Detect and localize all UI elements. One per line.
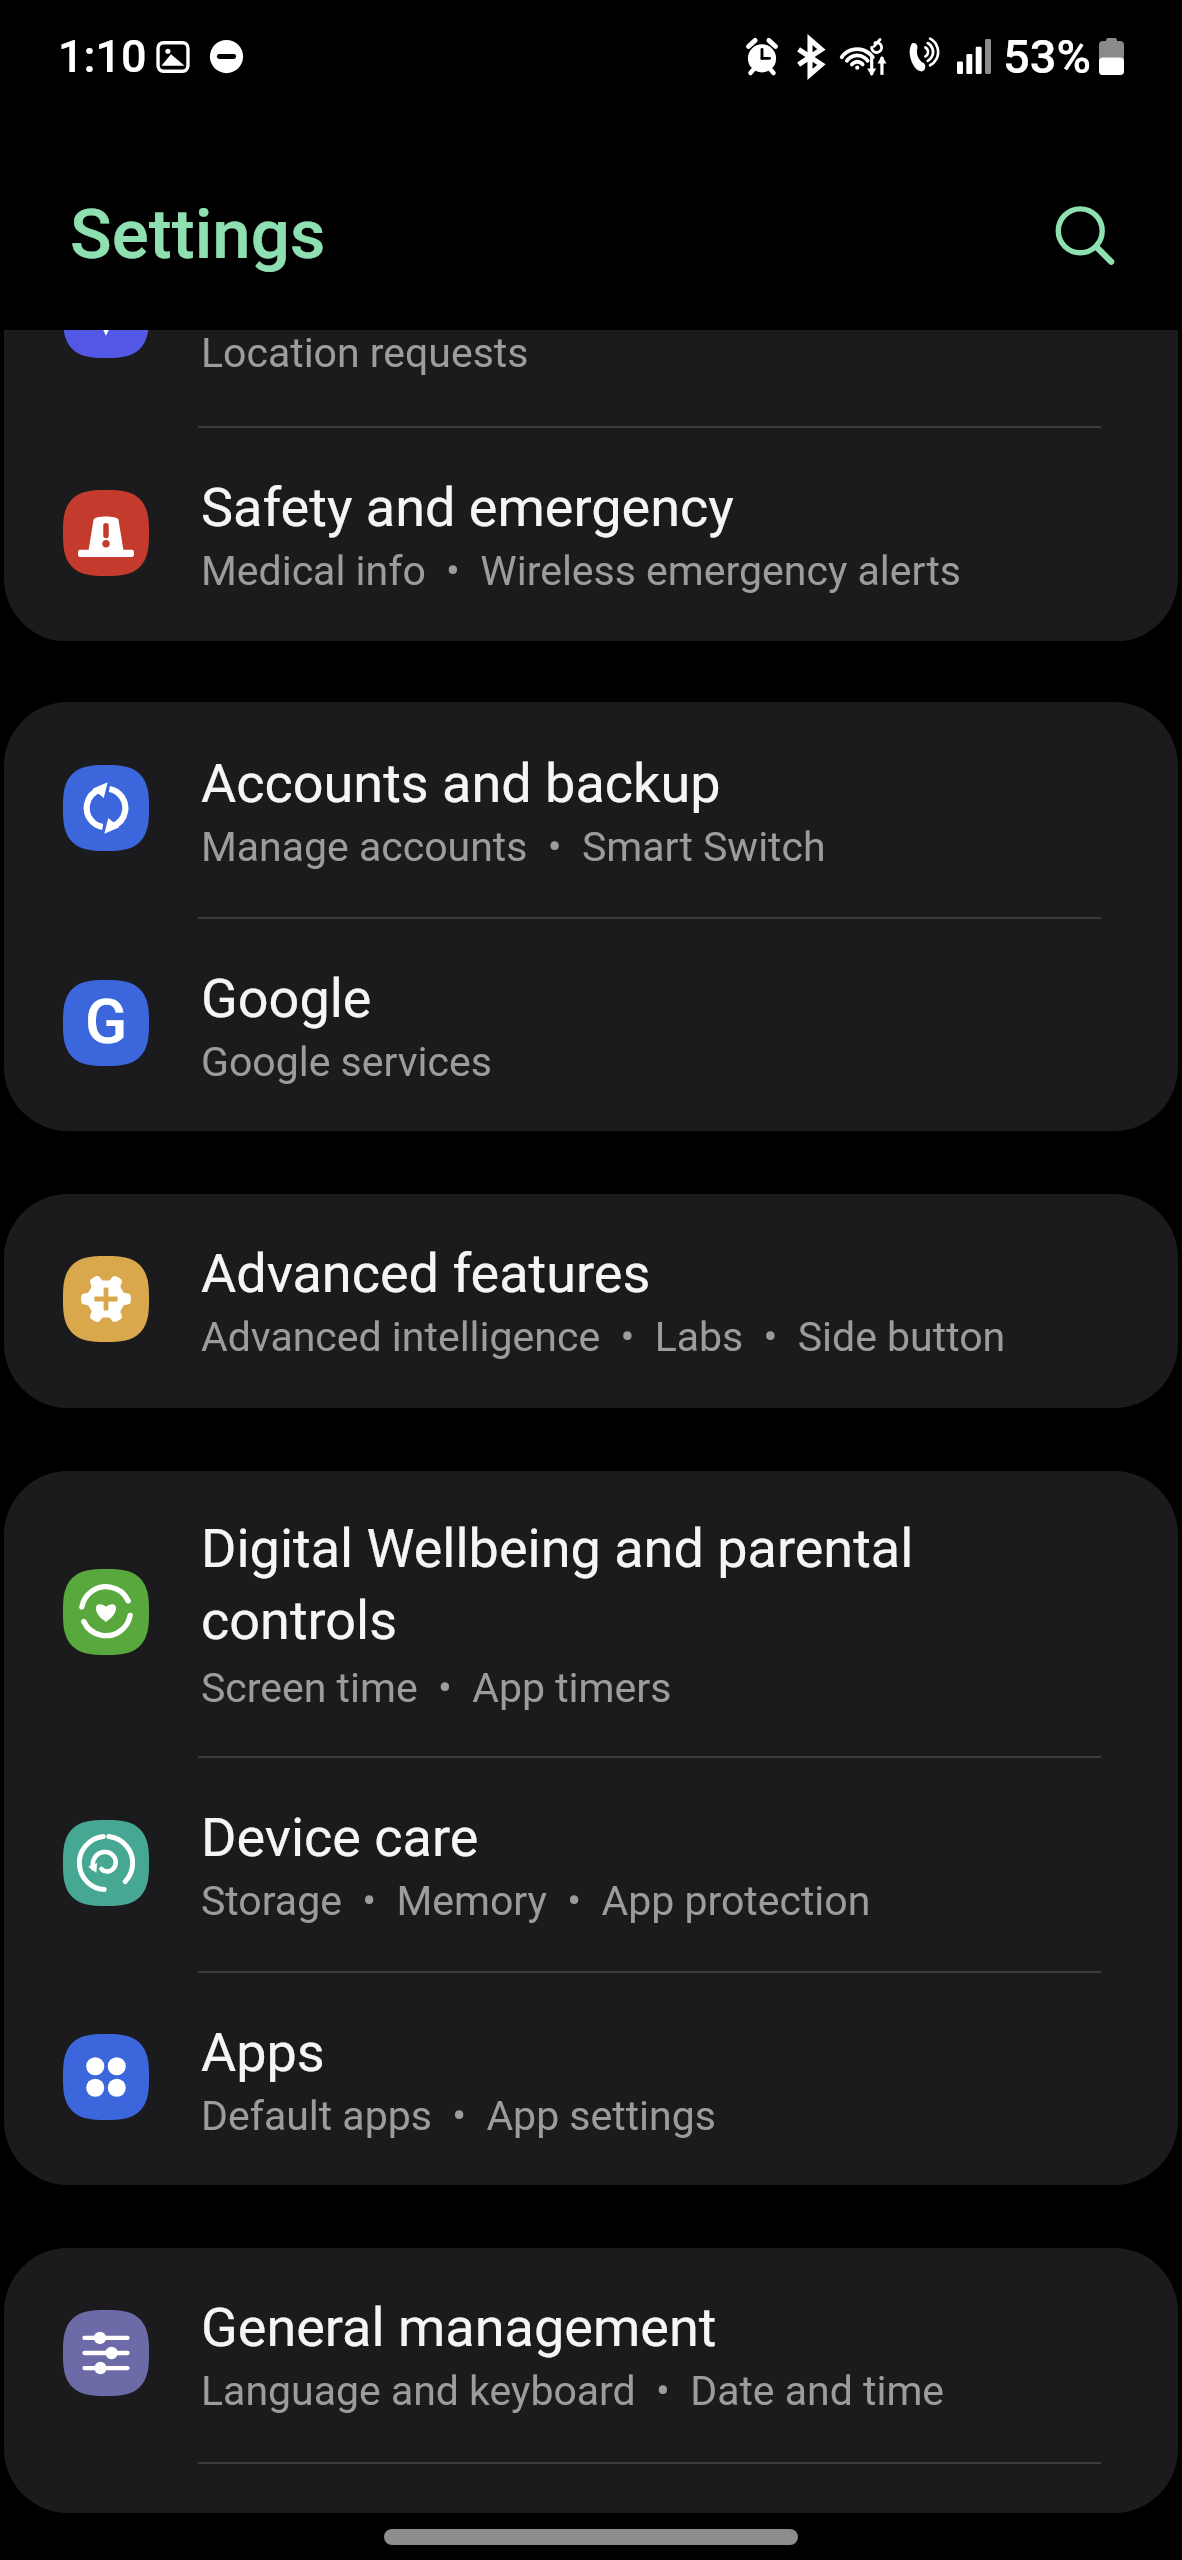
button[interactable]: Accounts and backup (4, 702, 1178, 917)
staticText: Google (201, 967, 372, 1030)
staticText: Screen time • App timers (201, 1664, 672, 1712)
button[interactable]: Search (1024, 176, 1148, 300)
staticText: 1:10 (58, 30, 147, 83)
staticText: Storage • Memory • App protection (201, 1877, 871, 1925)
staticText: 53% (1003, 29, 1091, 84)
button[interactable]: General management (4, 2248, 1178, 2462)
staticText: Default apps • App settings (201, 2092, 716, 2140)
button[interactable]: Location (4, 330, 1178, 426)
button[interactable]: Digital Wellbeing and parental controls (4, 1471, 1178, 1756)
staticText: Advanced intelligence • Labs • Side butt… (201, 1313, 1006, 1361)
staticText: Accounts and backup (201, 752, 721, 815)
button[interactable]: G (4, 919, 1178, 1131)
button[interactable]: Device care (4, 1758, 1178, 1971)
staticText: G (85, 985, 128, 1058)
staticText: Settings (70, 194, 326, 275)
button[interactable]: Safety and emergency (4, 428, 1178, 641)
staticText: Google services (201, 1038, 492, 1086)
staticText: General management (201, 2296, 717, 2359)
staticText: Location requests (201, 330, 529, 377)
staticText: Safety and emergency (201, 476, 734, 539)
staticText: Medical info • Wireless emergency alerts (201, 547, 961, 595)
staticText: Advanced features (201, 1242, 651, 1305)
staticText: Language and keyboard • Date and time (201, 2367, 945, 2415)
button[interactable]: Apps (4, 1973, 1178, 2185)
staticText: Device care (201, 1806, 479, 1869)
staticText: Digital Wellbeing and parental controls (201, 1517, 1081, 1652)
staticText: Apps (201, 2021, 325, 2084)
button[interactable]: Advanced features (4, 1194, 1178, 1408)
staticText: Manage accounts • Smart Switch (201, 823, 826, 871)
